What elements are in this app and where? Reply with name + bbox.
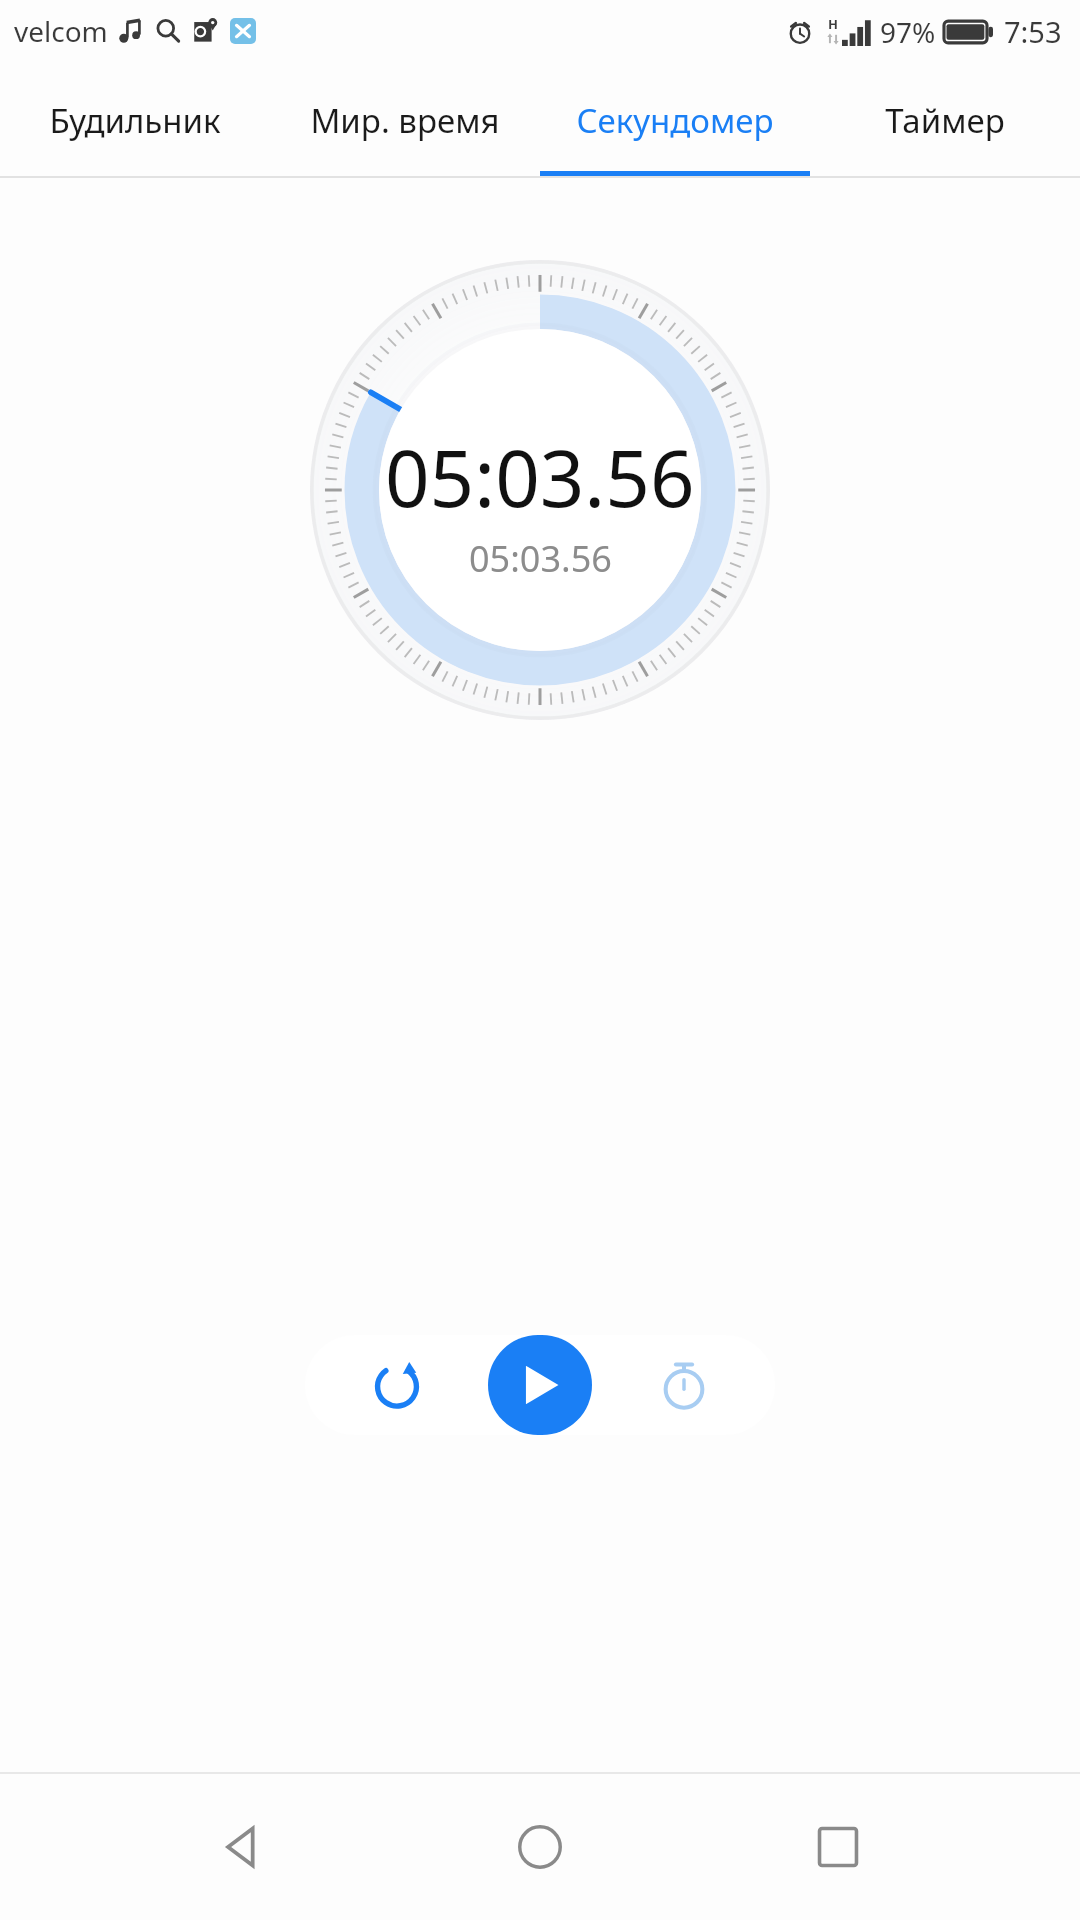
staticText: velcom <box>14 12 108 50</box>
staticText: 05:03.56 <box>385 424 695 530</box>
staticText: Таймер <box>885 98 1005 143</box>
button[interactable]: Reset <box>354 1342 440 1428</box>
staticText: H <box>828 15 838 33</box>
button[interactable]: Мир. время <box>270 62 540 178</box>
button[interactable]: Start <box>488 1335 592 1435</box>
staticText: 05:03.56 <box>469 534 612 583</box>
staticText: Мир. время <box>310 98 500 143</box>
button[interactable]: Таймер <box>810 62 1080 178</box>
button[interactable]: Home <box>485 1792 595 1902</box>
button[interactable]: Будильник <box>0 62 270 178</box>
staticText: 97% <box>880 13 936 51</box>
button[interactable]: Секундомер <box>540 62 810 178</box>
button[interactable]: Recents <box>783 1792 893 1902</box>
staticText: 7:53 <box>1004 12 1062 51</box>
button[interactable]: Lap <box>641 1342 727 1428</box>
staticText: Секундомер <box>576 98 774 143</box>
button[interactable]: Back <box>188 1792 298 1902</box>
staticText: Будильник <box>49 98 221 143</box>
